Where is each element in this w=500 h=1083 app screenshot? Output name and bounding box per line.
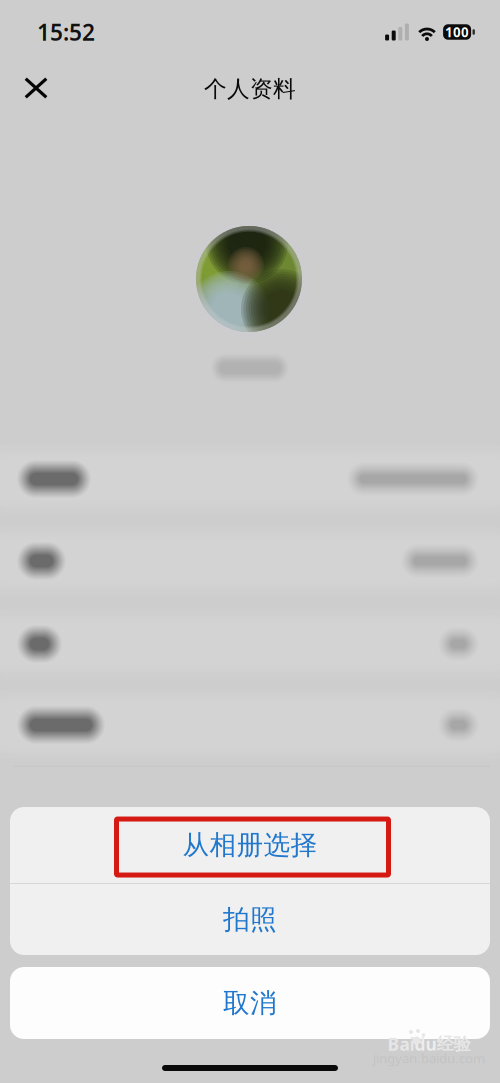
staticText: 拍照 — [223, 903, 277, 936]
staticText: du — [414, 1032, 436, 1055]
staticText: jingyan.baidu.com — [373, 1049, 485, 1067]
staticText: 15:52 — [37, 17, 95, 47]
staticText: 100 — [445, 23, 469, 41]
button[interactable]: 拍照 — [10, 884, 490, 955]
staticText: 个人资料 — [204, 75, 296, 103]
staticText: Bai — [387, 1032, 414, 1055]
button[interactable]: 取消 — [10, 967, 490, 1039]
staticText: 取消 — [223, 987, 277, 1019]
button[interactable]: 从相册选择 — [10, 807, 490, 883]
button[interactable]: Close — [12, 65, 60, 113]
staticText: 从相册选择 — [182, 829, 317, 861]
staticText: 经验 — [436, 1033, 470, 1055]
